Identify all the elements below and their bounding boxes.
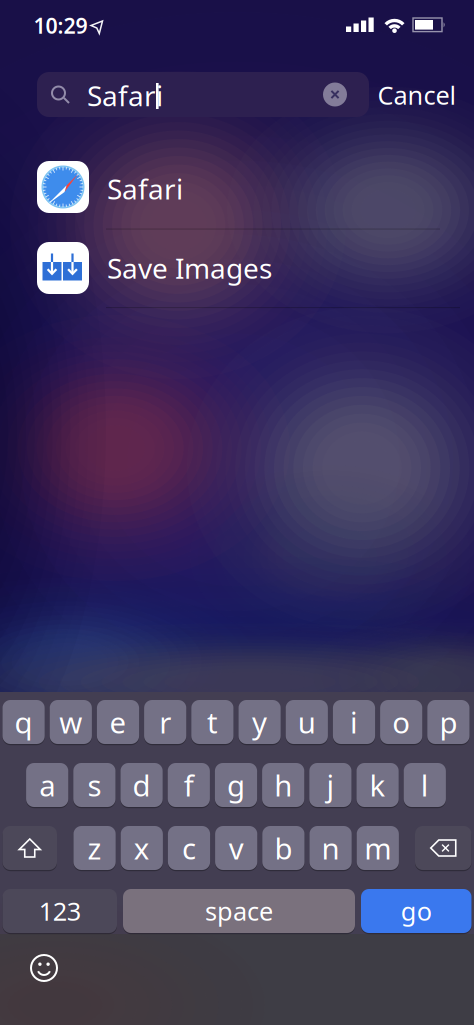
button[interactable]: 123	[2, 889, 117, 933]
staticText: 10:29	[33, 11, 87, 40]
button[interactable]: c	[168, 826, 210, 870]
staticText: x	[134, 828, 150, 867]
staticText: i	[350, 702, 358, 741]
staticText: Save Images	[107, 249, 272, 287]
button[interactable]: Delete	[415, 826, 471, 870]
button[interactable]: u	[286, 700, 328, 744]
staticText: space	[205, 894, 273, 928]
button[interactable]: Safari	[0, 149, 474, 228]
staticText: p	[439, 702, 457, 741]
button[interactable]: x	[121, 826, 163, 870]
staticText: f	[184, 765, 194, 804]
button[interactable]: e	[97, 700, 139, 744]
staticText: Safari	[107, 170, 183, 207]
staticText: r	[159, 702, 171, 741]
staticText: d	[133, 765, 151, 804]
staticText: t	[207, 702, 218, 741]
button[interactable]: o	[380, 700, 422, 744]
button[interactable]: r	[144, 700, 186, 744]
staticText: n	[322, 828, 340, 867]
staticText: y	[252, 702, 267, 741]
button[interactable]: Cancel	[377, 78, 456, 112]
staticText: s	[87, 765, 101, 804]
button[interactable]: space	[123, 889, 355, 933]
staticText: l	[421, 765, 429, 804]
button[interactable]: f	[168, 763, 210, 807]
button[interactable]: Emoji	[29, 953, 59, 983]
staticText: go	[401, 894, 432, 928]
button[interactable]: l	[404, 763, 446, 807]
button[interactable]: y	[238, 700, 281, 744]
staticText: q	[15, 702, 33, 741]
button[interactable]: Safari	[37, 72, 369, 117]
button[interactable]: t	[191, 700, 233, 744]
staticText: v	[229, 828, 244, 867]
staticText: u	[298, 702, 316, 741]
staticText: k	[370, 765, 386, 804]
staticText: j	[326, 765, 334, 804]
button[interactable]: v	[215, 826, 257, 870]
staticText: b	[274, 828, 292, 867]
staticText: z	[88, 828, 102, 867]
button[interactable]: k	[356, 763, 399, 807]
button[interactable]: z	[73, 826, 116, 870]
staticText: Safari	[87, 77, 163, 114]
button[interactable]: m	[357, 826, 399, 870]
staticText: o	[392, 702, 410, 741]
staticText: e	[109, 702, 126, 741]
button[interactable]: b	[262, 826, 304, 870]
button[interactable]: h	[262, 763, 304, 807]
button[interactable]: s	[73, 763, 115, 807]
button[interactable]: go	[361, 889, 471, 933]
staticText: 123	[39, 894, 81, 928]
button[interactable]: q	[2, 700, 45, 744]
button[interactable]: a	[26, 763, 68, 807]
staticText: w	[59, 702, 82, 741]
button[interactable]: Save Images	[0, 228, 474, 307]
button[interactable]: p	[427, 700, 469, 744]
button[interactable]: j	[309, 763, 351, 807]
staticText: h	[274, 765, 292, 804]
staticText: g	[227, 765, 245, 804]
button[interactable]: i	[333, 700, 375, 744]
button[interactable]: Shift	[2, 826, 57, 870]
staticText: c	[182, 828, 196, 867]
staticText: Cancel	[377, 78, 456, 112]
button[interactable]: Clear text	[323, 82, 347, 106]
button[interactable]: n	[309, 826, 352, 870]
button[interactable]: g	[215, 763, 257, 807]
staticText: m	[364, 828, 391, 867]
button[interactable]: w	[50, 700, 92, 744]
button[interactable]: d	[120, 763, 163, 807]
staticText: a	[39, 765, 55, 804]
